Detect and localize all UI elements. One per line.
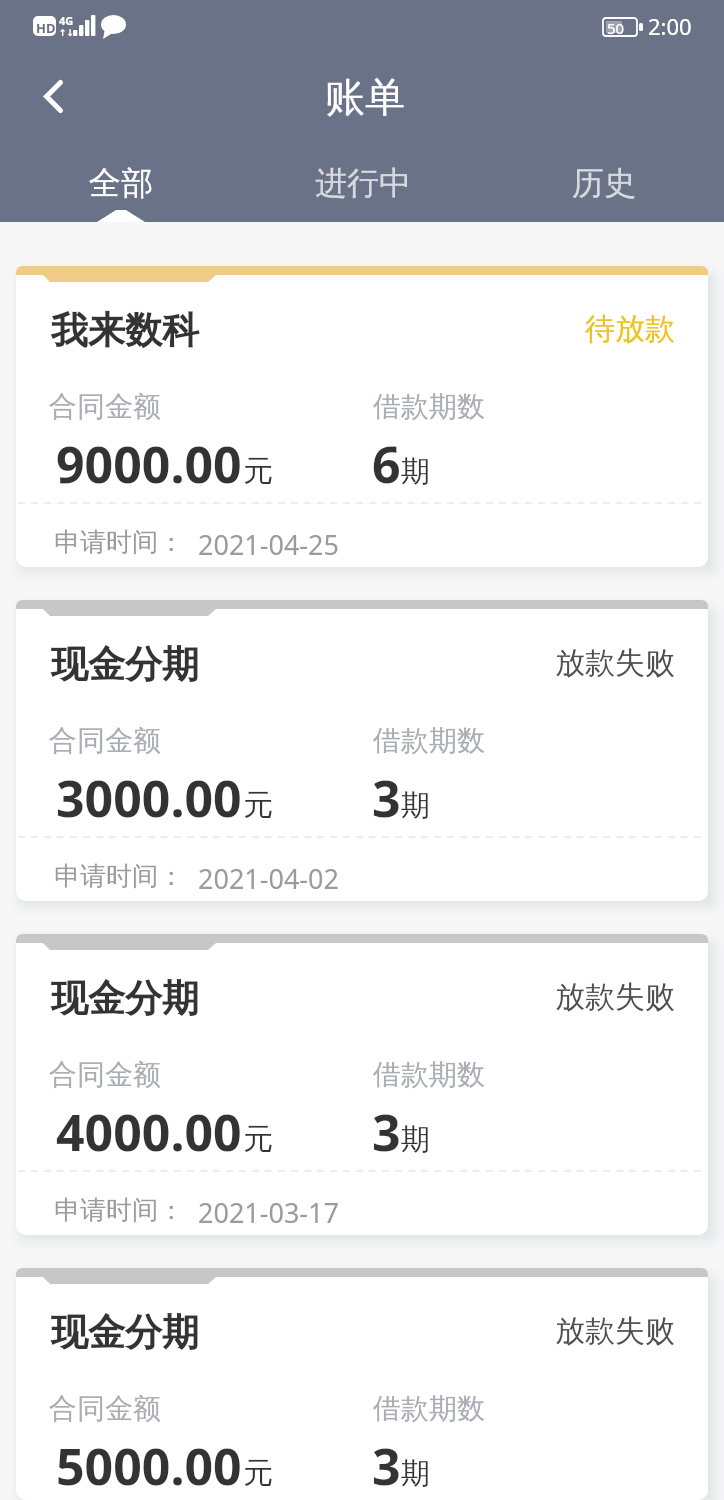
staticText: ↑↓: [59, 28, 75, 38]
staticText: 放款失败: [555, 644, 675, 682]
staticText: 合同金额: [49, 1391, 161, 1426]
staticText: 2:00: [648, 11, 692, 41]
staticText: 申请时间：: [54, 526, 184, 559]
staticText: 期: [401, 787, 430, 824]
staticText: 待放款: [585, 310, 675, 348]
staticText: 借款期数: [373, 389, 485, 424]
staticText: 借款期数: [373, 723, 485, 758]
staticText: 4000.00: [56, 1098, 242, 1166]
staticText: 借款期数: [373, 1391, 485, 1426]
staticText: HD: [36, 19, 56, 37]
staticText: 2021-04-25: [198, 526, 339, 563]
staticText: 申请时间：: [54, 860, 184, 893]
staticText: 期: [401, 1455, 430, 1492]
staticText: 3: [372, 1432, 401, 1500]
staticText: 现金分期: [51, 975, 199, 1022]
button[interactable]: 现金分期: [16, 616, 708, 901]
button[interactable]: Back: [26, 69, 80, 123]
staticText: 元: [243, 452, 273, 490]
staticText: 3: [372, 1098, 401, 1166]
staticText: 5000.00: [56, 1432, 242, 1500]
staticText: 期: [401, 453, 430, 490]
staticText: 现金分期: [51, 1309, 199, 1356]
staticText: 历史: [572, 163, 636, 203]
staticText: 进行中: [315, 163, 411, 203]
staticText: 3: [372, 764, 401, 832]
button[interactable]: 全部: [0, 160, 242, 206]
staticText: 借款期数: [373, 1057, 485, 1092]
staticText: 4G: [59, 13, 74, 28]
staticText: 元: [243, 1454, 273, 1492]
staticText: 放款失败: [555, 1312, 675, 1350]
button[interactable]: 现金分期: [16, 1284, 708, 1500]
staticText: 合同金额: [49, 723, 161, 758]
staticText: 现金分期: [51, 641, 199, 688]
staticText: 50: [607, 18, 625, 38]
staticText: 合同金额: [49, 1057, 161, 1092]
staticText: 合同金额: [49, 389, 161, 424]
staticText: 申请时间：: [54, 1194, 184, 1227]
staticText: 9000.00: [56, 430, 242, 498]
staticText: 2021-03-17: [198, 1194, 339, 1231]
staticText: 2021-04-02: [198, 860, 339, 897]
button[interactable]: 现金分期: [16, 950, 708, 1235]
button[interactable]: 历史: [483, 160, 724, 206]
staticText: 账单: [325, 72, 405, 122]
staticText: 元: [243, 1120, 273, 1158]
staticText: 全部: [89, 163, 153, 203]
staticText: 期: [401, 1121, 430, 1158]
staticText: 我来数科: [51, 307, 199, 354]
staticText: 3000.00: [56, 764, 242, 832]
staticText: 元: [243, 786, 273, 824]
staticText: 放款失败: [555, 978, 675, 1016]
staticText: 6: [372, 430, 401, 498]
button[interactable]: 我来数科: [16, 282, 708, 567]
button[interactable]: 进行中: [242, 160, 483, 206]
